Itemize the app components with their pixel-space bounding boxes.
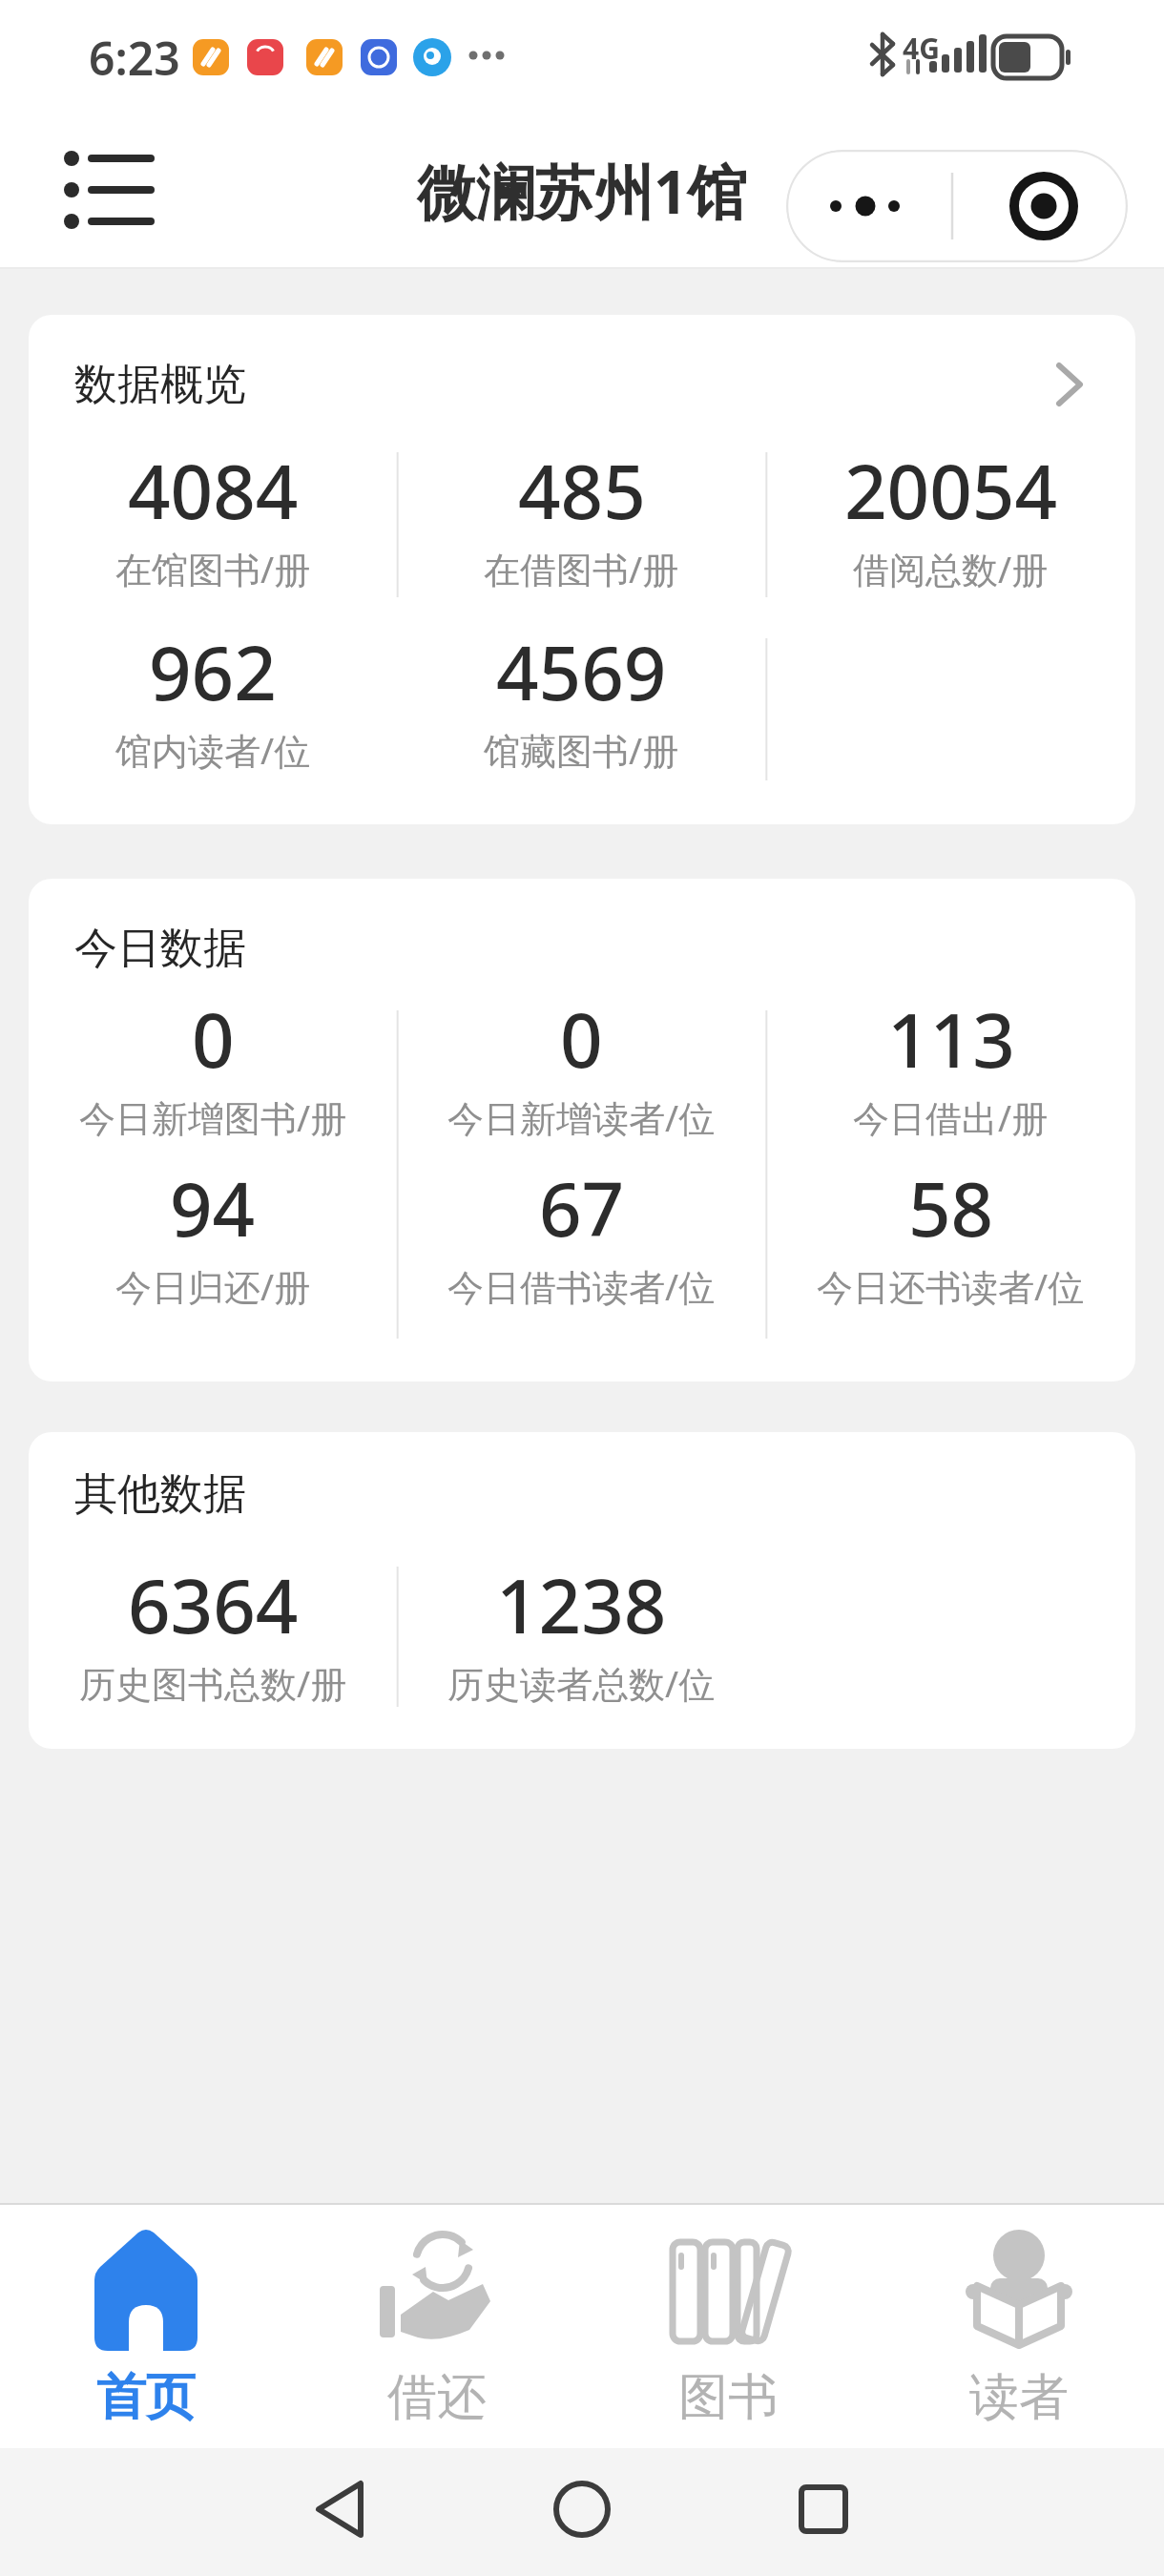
staticText: 今日新增读者/位 — [447, 1092, 716, 1142]
button[interactable] — [55, 137, 160, 242]
staticText: 4569 — [496, 621, 667, 722]
staticText: 0 — [192, 988, 235, 1090]
button[interactable]: 首页 — [0, 2205, 291, 2448]
staticText: 6:23 — [89, 27, 180, 89]
button[interactable]: 图书 — [582, 2205, 873, 2448]
staticText: 今日借书读者/位 — [447, 1261, 716, 1311]
staticText: 在馆图书/册 — [115, 544, 311, 593]
button[interactable] — [0, 2448, 387, 2576]
button[interactable] — [786, 150, 1128, 262]
button[interactable] — [776, 2448, 1164, 2576]
button[interactable]: 数据概览 — [29, 315, 1135, 824]
staticText: 67 — [539, 1157, 625, 1258]
staticText: 历史读者总数/位 — [447, 1658, 716, 1708]
button[interactable]: 借还 — [291, 2205, 582, 2448]
staticText: 962 — [149, 621, 277, 722]
staticText: 4084 — [128, 440, 299, 541]
button[interactable]: 读者 — [873, 2205, 1164, 2448]
staticText: 20054 — [844, 440, 1058, 541]
staticText: 历史图书总数/册 — [79, 1658, 347, 1708]
staticText: 6364 — [128, 1554, 299, 1655]
staticText: 馆内读者/位 — [115, 725, 311, 775]
staticText: 图书 — [678, 2366, 778, 2429]
staticText: 今日还书读者/位 — [817, 1261, 1085, 1311]
staticText: 今日新增图书/册 — [79, 1092, 347, 1142]
staticText: 485 — [518, 440, 646, 541]
staticText: 借还 — [387, 2366, 487, 2429]
staticText: 今日借出/册 — [853, 1092, 1049, 1142]
staticText: 微澜苏州1馆 — [417, 151, 747, 232]
staticText: 读者 — [969, 2366, 1069, 2429]
staticText: 今日数据 — [74, 922, 246, 976]
staticText: 数据概览 — [74, 358, 246, 412]
staticText: 首页 — [96, 2366, 196, 2429]
staticText: 1238 — [496, 1554, 667, 1655]
staticText: 其他数据 — [74, 1467, 246, 1522]
button[interactable] — [1053, 363, 1086, 406]
staticText: 58 — [908, 1157, 994, 1258]
staticText: 0 — [560, 988, 603, 1090]
button[interactable] — [387, 2448, 776, 2576]
staticText: 113 — [887, 988, 1015, 1090]
staticText: 借阅总数/册 — [853, 544, 1049, 593]
staticText: 4G — [903, 29, 940, 68]
staticText: 94 — [170, 1157, 256, 1258]
staticText: 今日归还/册 — [115, 1261, 311, 1311]
staticText: 馆藏图书/册 — [484, 725, 679, 775]
staticText: 在借图书/册 — [484, 544, 679, 593]
